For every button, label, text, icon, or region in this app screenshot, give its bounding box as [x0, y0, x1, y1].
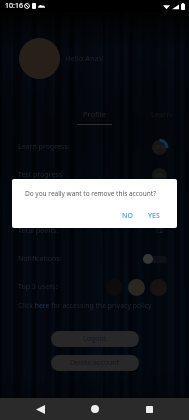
staticText: Top 3 users:	[18, 282, 58, 292]
staticText: 0%	[156, 172, 164, 179]
button[interactable]: Recent apps	[139, 398, 159, 420]
button[interactable]: User 3	[150, 279, 167, 296]
button[interactable]: User 1	[106, 279, 123, 296]
staticText: Do you really want to remove this accoun…	[25, 189, 156, 198]
staticText: 26%	[155, 144, 165, 151]
staticText: Notifications:	[18, 254, 62, 264]
staticText: Logout	[83, 334, 107, 344]
staticText: 10:16	[5, 1, 23, 11]
button[interactable]: Profile	[63, 109, 126, 125]
staticText: Delete account	[70, 358, 120, 368]
button[interactable]: Back	[30, 398, 50, 420]
button[interactable]: NO	[117, 209, 138, 223]
button[interactable]: YES	[143, 209, 165, 223]
staticText: Hello AnaV	[65, 53, 104, 63]
staticText: Total points:	[18, 226, 59, 236]
button[interactable]: Profile picture	[19, 38, 60, 79]
button[interactable]: Click here for accessing the privacy pol…	[18, 301, 152, 310]
staticText: Click here for accessing the privacy pol…	[18, 301, 152, 310]
staticText: Learn progress:	[18, 142, 70, 152]
button[interactable]: User 2	[128, 279, 145, 296]
staticText: 12	[155, 226, 164, 236]
button[interactable]: Home	[85, 398, 105, 420]
staticText: Learn	[151, 109, 172, 119]
button[interactable]: Logout	[51, 331, 139, 347]
staticText: Profile	[83, 109, 106, 119]
button[interactable]: Notifications toggle	[143, 252, 167, 266]
button[interactable]: Delete account	[51, 355, 139, 371]
staticText: Test progress:	[18, 170, 64, 180]
